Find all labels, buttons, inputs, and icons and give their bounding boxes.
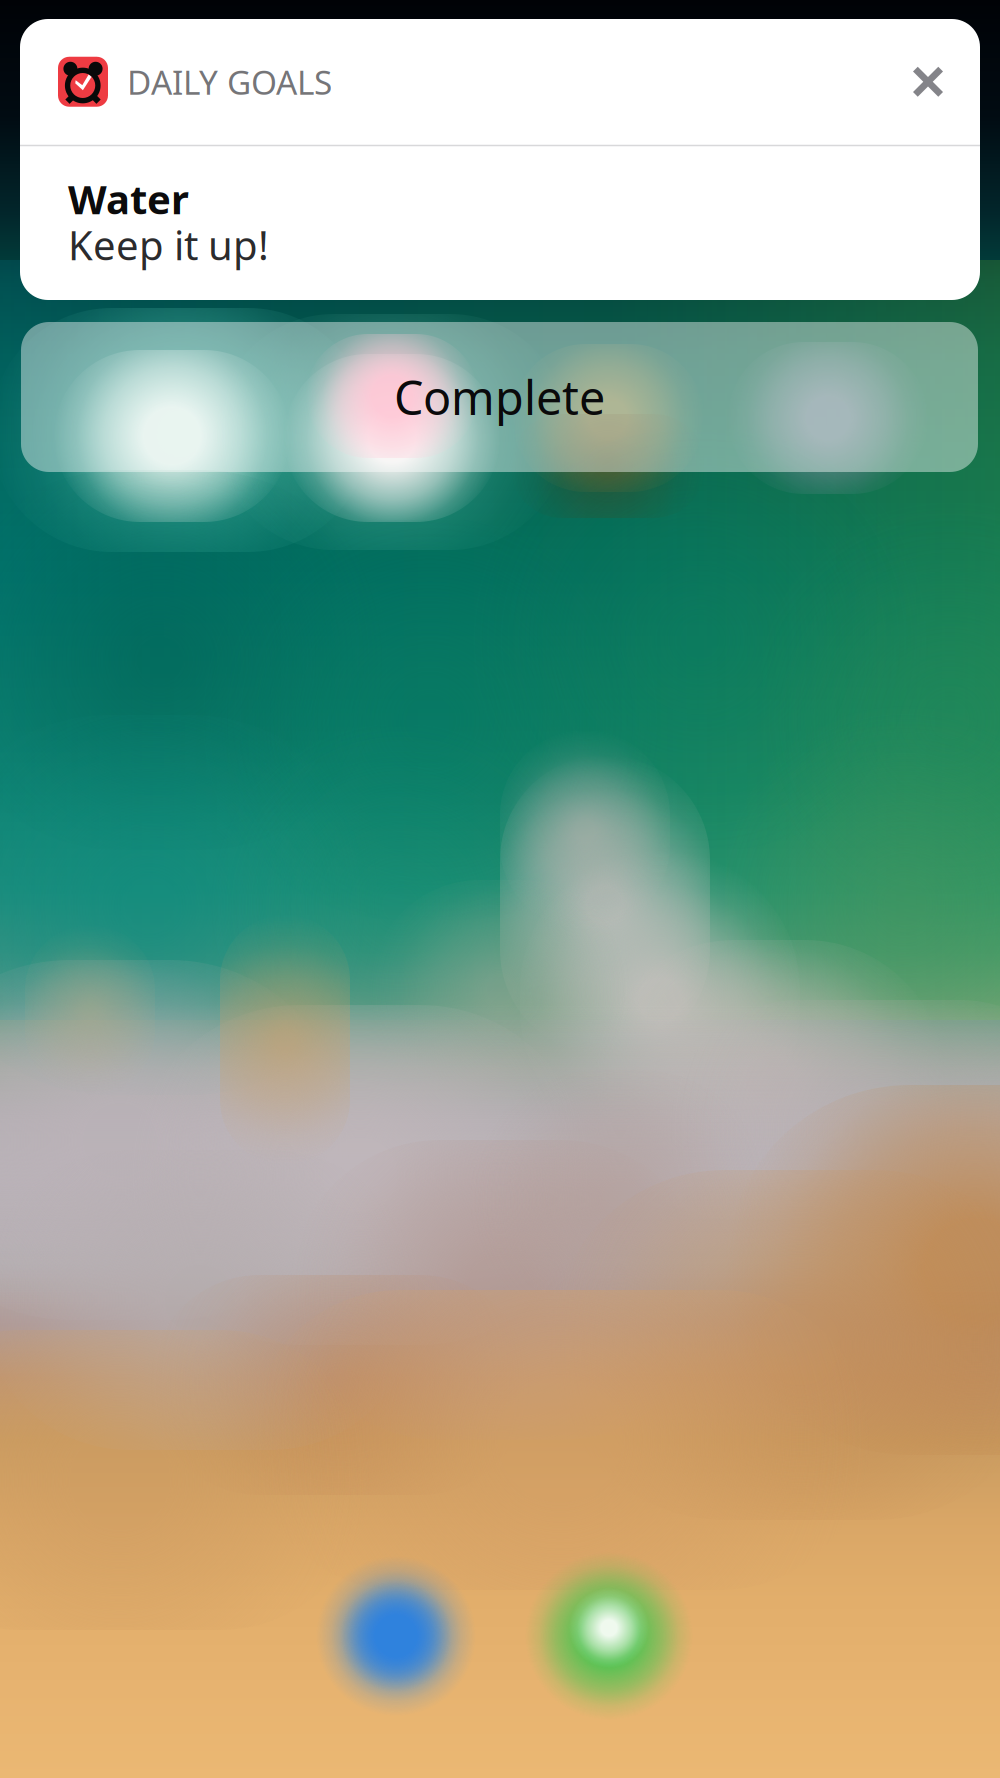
staticText: Water	[68, 172, 189, 225]
staticText: Complete	[394, 366, 605, 428]
button[interactable]: Complete	[21, 322, 978, 472]
button[interactable]: Daily Goals	[20, 19, 980, 145]
staticText: DAILY GOALS	[127, 60, 332, 104]
button[interactable]: Water	[20, 146, 980, 300]
staticText: Keep it up!	[68, 218, 269, 271]
